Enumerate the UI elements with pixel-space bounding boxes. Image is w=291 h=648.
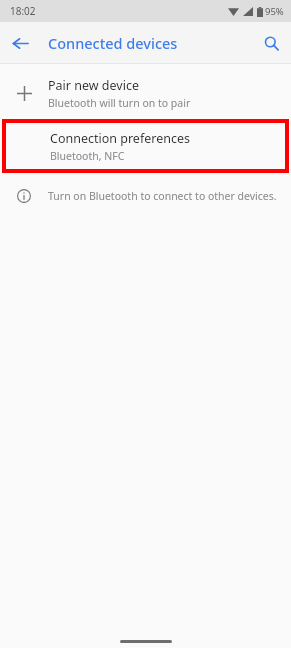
button[interactable]: Turn on Bluetooth to connect to other de… [0,181,291,211]
staticText: Connected devices [48,33,178,53]
staticText: Pair new device [48,77,139,94]
staticText: Connection preferences [50,130,190,147]
button[interactable]: Back [0,23,40,63]
staticText: Bluetooth, NFC [50,149,125,163]
button[interactable]: Search [251,23,291,63]
button[interactable]: Connection preferences [6,123,285,169]
button[interactable]: Pair new device [0,70,291,116]
staticText: Turn on Bluetooth to connect to other de… [48,189,277,203]
staticText: Bluetooth will turn on to pair [48,96,191,110]
staticText: 95% [265,5,284,18]
staticText: 18:02 [10,4,36,18]
